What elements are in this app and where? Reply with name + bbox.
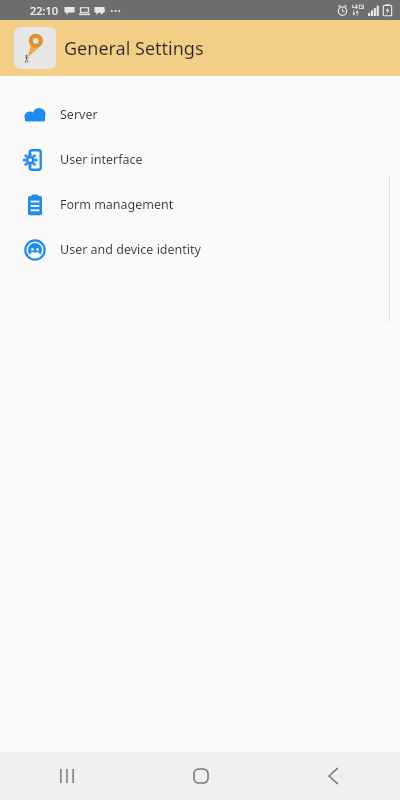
staticText: Server (60, 106, 98, 123)
button[interactable]: User interface (0, 137, 400, 182)
staticText: 22:10 (30, 3, 59, 18)
button[interactable]: Back (267, 752, 400, 800)
staticText: Form management (60, 196, 174, 213)
button[interactable]: Server (0, 92, 400, 137)
button[interactable]: Form management (0, 182, 400, 227)
staticText: General Settings (64, 36, 204, 61)
button[interactable]: User and device identity (0, 227, 400, 272)
button[interactable]: Recents (0, 752, 134, 800)
other: App logo (14, 27, 56, 69)
staticText: User interface (60, 151, 143, 168)
button[interactable]: Home (134, 752, 267, 800)
staticText: User and device identity (60, 241, 201, 258)
